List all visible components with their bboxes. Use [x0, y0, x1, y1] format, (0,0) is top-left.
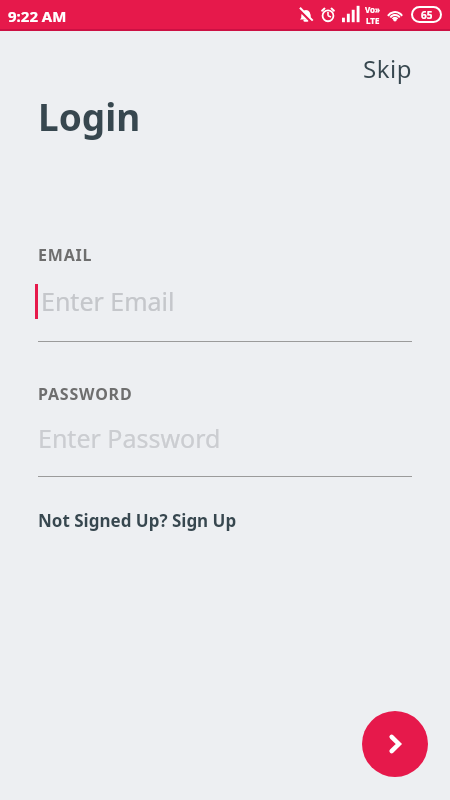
staticText: Enter Password [38, 421, 221, 455]
button[interactable]: Not Signed Up? Sign Up [38, 509, 237, 532]
button[interactable] [362, 711, 428, 777]
staticText: Enter Email [41, 284, 175, 318]
button[interactable]: Skip [363, 52, 412, 85]
staticText: Login [38, 91, 141, 141]
staticText: PASSWORD [38, 383, 133, 405]
staticText: EMAIL [38, 244, 93, 266]
staticText: 65 [421, 8, 433, 22]
staticText: 9:22 AM [8, 6, 67, 26]
staticText: Vo» [365, 4, 380, 15]
staticText: LTE [366, 15, 380, 26]
